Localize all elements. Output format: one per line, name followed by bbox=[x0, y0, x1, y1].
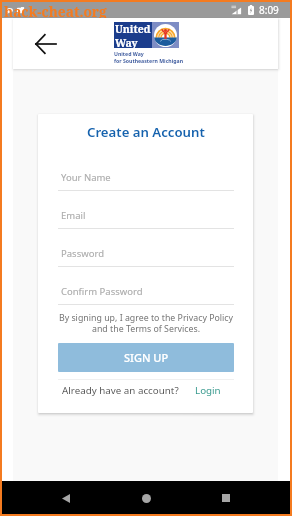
staticText: SIGN UP bbox=[124, 350, 169, 365]
button[interactable]: Email bbox=[58, 203, 234, 228]
staticText: 8:09 bbox=[259, 3, 279, 17]
staticText: Email bbox=[61, 209, 86, 222]
button[interactable]: Back bbox=[32, 31, 58, 57]
button[interactable]: Your Name bbox=[58, 165, 234, 190]
button[interactable]: Confirm Password bbox=[58, 279, 234, 304]
staticText: United bbox=[115, 22, 151, 36]
button[interactable]: Back bbox=[50, 482, 82, 514]
staticText: Password bbox=[61, 247, 104, 260]
staticText: Login bbox=[195, 384, 221, 397]
button[interactable]: Login bbox=[195, 384, 234, 397]
staticText: for Southeastern Michigan bbox=[114, 57, 184, 64]
button[interactable]: Recents bbox=[210, 482, 242, 514]
button[interactable]: SIGN UP bbox=[58, 343, 234, 372]
staticText: Create an Account bbox=[87, 123, 205, 141]
staticText: By signing up, I agree to the Privacy Po… bbox=[58, 312, 234, 335]
button[interactable]: Password bbox=[58, 241, 234, 266]
staticText: Already have an account? bbox=[62, 384, 179, 397]
staticText: Confirm Password bbox=[61, 285, 143, 298]
button[interactable]: Home bbox=[130, 482, 162, 514]
staticText: Your Name bbox=[61, 171, 111, 184]
staticText: United Way bbox=[114, 50, 144, 57]
staticText: Way bbox=[115, 36, 138, 48]
staticText: hack-cheat.org bbox=[4, 2, 107, 18]
